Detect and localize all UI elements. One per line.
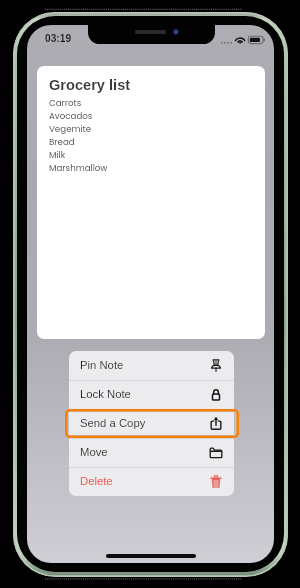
button[interactable]: Send a Copy	[69, 409, 234, 438]
staticText: Grocery list	[49, 77, 131, 93]
staticText: 03:19	[45, 33, 72, 44]
staticText: Carrots	[49, 96, 82, 109]
staticText: Move	[80, 446, 108, 459]
staticText: Milk	[49, 148, 66, 161]
button[interactable]: Pin Note	[69, 351, 234, 380]
staticText: Pin Note	[80, 359, 124, 372]
staticText: Delete	[80, 475, 113, 488]
staticText: Marshmallow	[49, 161, 108, 174]
staticText: Bread	[49, 135, 75, 148]
staticText: Lock Note	[80, 388, 131, 401]
staticText: Send a Copy	[80, 417, 146, 430]
button[interactable]: Grocery list	[37, 66, 265, 339]
button[interactable]: Delete	[69, 467, 234, 496]
staticText: Vegemite	[49, 122, 92, 135]
button[interactable]: Move	[69, 438, 234, 467]
button[interactable]: Lock Note	[69, 380, 234, 409]
staticText: Avocados	[49, 109, 93, 122]
